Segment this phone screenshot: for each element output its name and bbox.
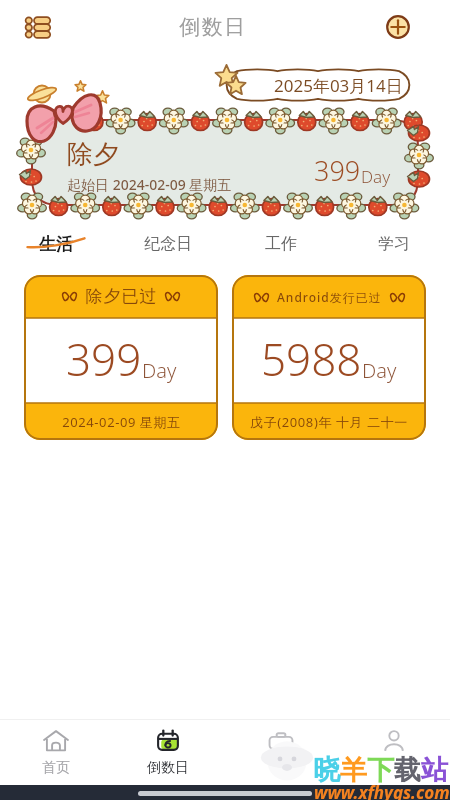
staticText: 399 bbox=[66, 329, 142, 389]
staticText: 除夕 bbox=[67, 138, 119, 171]
staticText: 生活 bbox=[39, 234, 73, 255]
button[interactable]: Menu bbox=[18, 7, 58, 47]
staticText: 晓 bbox=[313, 753, 340, 787]
staticText: 除夕已过 bbox=[85, 286, 157, 307]
staticText: 倒数日 bbox=[179, 14, 247, 40]
button[interactable]: Add bbox=[380, 9, 416, 45]
staticText: 纪念日 bbox=[144, 234, 192, 254]
button[interactable]: 2025年03月14日 bbox=[222, 70, 414, 100]
staticText: www.xfhygs.com bbox=[314, 781, 450, 800]
button[interactable]: 首页 bbox=[0, 720, 112, 785]
staticText: 学习 bbox=[378, 234, 410, 254]
staticText: 5988 bbox=[261, 329, 362, 389]
staticText: 羊 bbox=[340, 753, 367, 787]
staticText: 工作 bbox=[265, 234, 297, 254]
staticText: 2025年03月14日 bbox=[274, 74, 403, 97]
staticText: Day bbox=[362, 357, 397, 384]
staticText: 戊子(2008)年 十月 二十一 bbox=[250, 413, 408, 431]
staticText: Day bbox=[361, 165, 391, 188]
staticText: 站 bbox=[421, 753, 448, 787]
staticText: 下 bbox=[367, 753, 394, 787]
staticText: 载 bbox=[394, 753, 421, 787]
button[interactable]: 工作 bbox=[224, 228, 337, 260]
button[interactable]: Android发行已过 bbox=[232, 275, 426, 440]
button[interactable]: 纪念日 bbox=[112, 228, 224, 260]
button[interactable]: 学习 bbox=[337, 228, 450, 260]
staticText: 2024-02-09 星期五 bbox=[62, 413, 181, 431]
button[interactable]: 除夕已过 bbox=[24, 275, 218, 440]
staticText: 399 bbox=[314, 152, 361, 189]
button[interactable] bbox=[32, 120, 418, 205]
button[interactable]: Profile bbox=[337, 720, 450, 785]
staticText: 倒数日 bbox=[147, 759, 189, 777]
staticText: Day bbox=[142, 357, 177, 384]
button[interactable]: Tools bbox=[224, 720, 337, 785]
staticText: 起始日 2024-02-09 星期五 bbox=[67, 175, 232, 194]
staticText: Android发行已过 bbox=[277, 289, 382, 305]
button[interactable]: 生活 bbox=[0, 228, 112, 260]
staticText: 首页 bbox=[42, 759, 70, 777]
button[interactable]: 倒数日 bbox=[112, 720, 224, 785]
